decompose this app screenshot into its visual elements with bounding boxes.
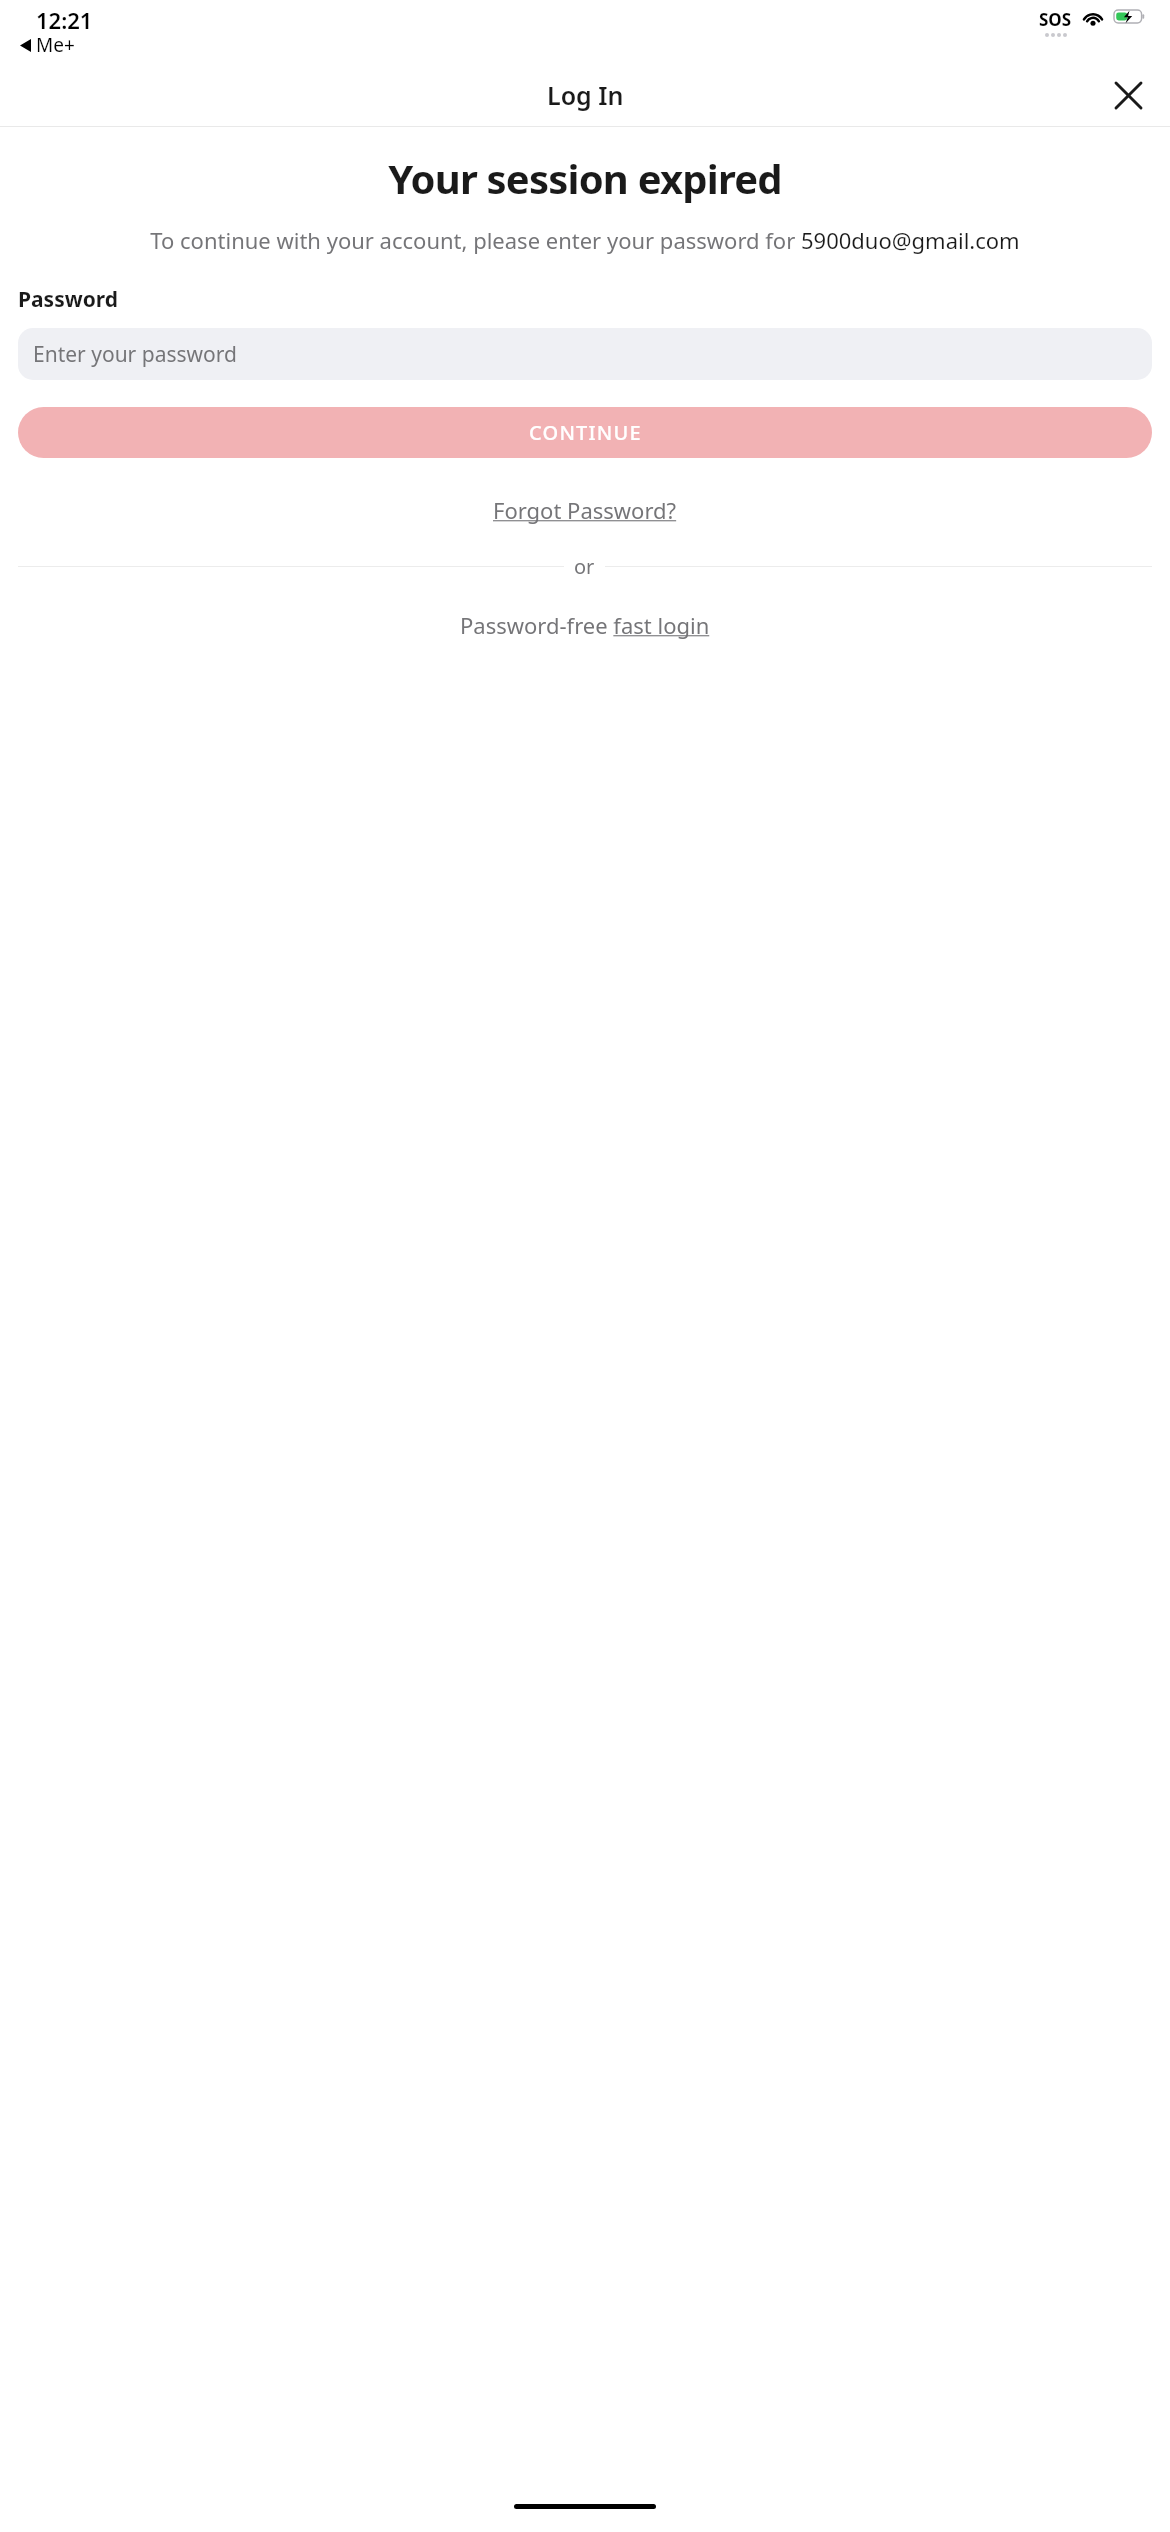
button[interactable]: CONTINUE	[18, 407, 1152, 458]
button[interactable]: Enter your password	[18, 328, 1152, 380]
staticText: Log In	[547, 78, 624, 112]
staticText: or	[574, 553, 595, 580]
staticText: 12:21	[36, 5, 93, 35]
staticText: SOS	[1039, 8, 1072, 31]
button[interactable]: Close	[1106, 73, 1150, 117]
button[interactable]: Back to Me+	[20, 32, 75, 58]
staticText: Enter your password	[33, 340, 237, 369]
staticText: Password	[18, 285, 119, 314]
staticText: Your session expired	[12, 151, 1158, 205]
staticText: CONTINUE	[529, 419, 642, 446]
staticText: To continue with your account, please en…	[17, 225, 1153, 255]
staticText: Forgot Password?	[493, 495, 677, 525]
button[interactable]: Password-free fast login	[452, 606, 718, 644]
button[interactable]: Forgot Password?	[485, 491, 685, 529]
staticText: Me+	[36, 32, 75, 58]
staticText: Password-free fast login	[460, 610, 710, 640]
